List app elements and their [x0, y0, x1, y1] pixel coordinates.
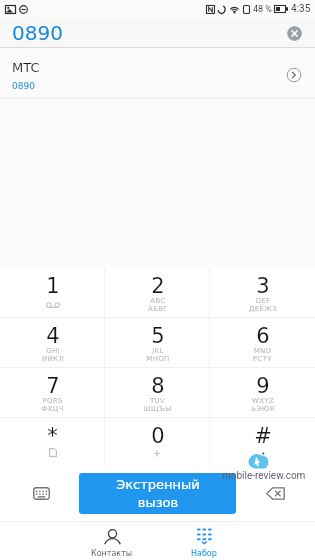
staticText: 3	[256, 274, 270, 298]
staticText: TUV ШЩЪЫ	[143, 397, 172, 412]
staticText: 4:35	[291, 3, 311, 15]
button[interactable]: 9	[210, 368, 315, 417]
button[interactable]: *	[0, 418, 105, 465]
staticText: WXYZ ЬЭЮЯ	[251, 397, 275, 412]
staticText: 0890	[12, 81, 35, 91]
staticText: 4	[46, 324, 60, 348]
staticText: 7	[46, 374, 60, 398]
staticText: 5	[151, 324, 165, 348]
button[interactable]: 5	[105, 318, 210, 367]
staticText: MNO РСТУ	[253, 347, 272, 362]
button[interactable]: 0	[105, 418, 210, 465]
button[interactable]: 6	[210, 318, 315, 367]
button[interactable]: 2	[105, 268, 210, 317]
staticText: 2	[151, 274, 165, 298]
button[interactable]: 1	[0, 268, 105, 317]
button[interactable]: Набор	[164, 522, 244, 560]
button[interactable]: Keyboard	[27, 479, 55, 507]
staticText: PQRS ФХЦЧ	[41, 397, 64, 412]
button[interactable]: 3	[210, 268, 315, 317]
button[interactable]: 4	[0, 318, 105, 367]
button[interactable]: Clear	[287, 26, 302, 41]
staticText: 0890	[12, 21, 63, 44]
staticText: 8	[151, 374, 165, 398]
staticText: 1	[46, 274, 60, 298]
button[interactable]: 7	[0, 368, 105, 417]
button[interactable]: Экстренный вызов	[79, 473, 236, 514]
staticText: mobile-review.com	[222, 470, 306, 482]
staticText: 0	[151, 424, 165, 448]
button[interactable]: #	[210, 418, 315, 465]
button[interactable]: 8	[105, 368, 210, 417]
staticText: JKL МНОП	[146, 347, 170, 362]
staticText: +	[154, 447, 161, 460]
staticText: Контакты	[91, 549, 133, 558]
button[interactable]: MTC	[0, 48, 315, 99]
staticText: 48 %	[253, 4, 272, 15]
button[interactable]: Контакты	[72, 522, 152, 560]
button[interactable]: Expand contact	[286, 67, 302, 83]
staticText: DEF ДЕЁЖЗ	[249, 297, 277, 312]
button[interactable]: Backspace	[261, 479, 289, 507]
staticText: MTC	[12, 60, 40, 75]
staticText: 6	[256, 324, 270, 348]
staticText: 9	[256, 374, 270, 398]
staticText: *	[47, 424, 58, 448]
staticText: Экстренный вызов	[116, 477, 200, 510]
staticText: GHI ИЙКЛ	[42, 347, 64, 362]
staticText: Набор	[191, 549, 217, 558]
staticText: ABC АБВГ	[148, 297, 168, 312]
staticText: #	[254, 424, 272, 448]
